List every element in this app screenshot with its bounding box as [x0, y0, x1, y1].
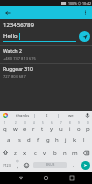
staticText: l — [83, 136, 85, 144]
button[interactable]: j — [61, 133, 70, 146]
button[interactable]: v — [40, 146, 50, 159]
staticText: 123456789 — [3, 21, 34, 29]
staticText: f — [37, 136, 40, 144]
staticText: c — [34, 149, 37, 157]
staticText: s — [18, 136, 21, 144]
button[interactable]: Watch 2 — [0, 45, 92, 63]
button[interactable]: n — [60, 146, 70, 159]
button[interactable]: Period — [69, 159, 78, 171]
staticText: d — [27, 136, 31, 144]
button[interactable]: c — [30, 146, 40, 159]
button[interactable]: 9 — [74, 120, 83, 133]
button[interactable]: b — [50, 146, 60, 159]
staticText: g — [46, 136, 50, 144]
button[interactable]: m — [70, 146, 80, 159]
button[interactable]: 1 — [0, 120, 10, 133]
staticText: m — [72, 149, 78, 157]
staticText: o — [77, 125, 81, 133]
button[interactable]: Send — [81, 161, 90, 170]
button[interactable]: k — [70, 133, 79, 146]
staticText: p — [86, 125, 90, 133]
staticText: 0 — [87, 121, 89, 125]
button[interactable]: Backspace — [80, 146, 92, 159]
button[interactable]: 6 — [47, 120, 56, 133]
staticText: 8 — [69, 121, 71, 125]
staticText: q — [3, 125, 7, 133]
staticText: x — [23, 149, 27, 157]
staticText: +480 737 813 676 — [3, 56, 36, 61]
staticText: 4 — [33, 121, 35, 125]
staticText: 9 — [78, 121, 80, 125]
staticText: y — [50, 125, 54, 133]
button[interactable]: 2 — [10, 120, 20, 133]
staticText: e — [23, 125, 27, 133]
button[interactable]: x — [20, 146, 30, 159]
staticText: . — [73, 162, 75, 169]
button[interactable]: z — [11, 146, 20, 159]
staticText: j — [65, 136, 67, 144]
button[interactable]: l — [79, 133, 88, 146]
button[interactable]: Ruggear 310 — [0, 63, 92, 81]
staticText: 7 — [60, 121, 62, 125]
staticText: t — [41, 125, 44, 133]
button[interactable]: 4 — [29, 120, 38, 133]
staticText: 10:42 — [82, 1, 91, 6]
staticText: n — [63, 149, 67, 157]
staticText: thanks — [16, 113, 30, 119]
button[interactable]: a — [4, 133, 14, 146]
staticText: w — [13, 125, 18, 133]
staticText: Hello — [3, 32, 18, 40]
staticText: 3 — [24, 121, 26, 125]
button[interactable]: Comma — [13, 159, 22, 171]
button[interactable]: Shift — [0, 146, 11, 159]
staticText: Watch 2 — [3, 48, 22, 55]
staticText: v — [43, 149, 47, 157]
staticText: u — [59, 125, 63, 133]
button[interactable]: Emoji — [22, 159, 31, 171]
button[interactable]: 7 — [56, 120, 65, 133]
button[interactable]: 3 — [20, 120, 29, 133]
staticText: 1 — [4, 121, 6, 125]
button[interactable]: we — [59, 111, 82, 120]
staticText: ?123 — [3, 163, 11, 168]
button[interactable]: d — [24, 133, 34, 146]
button[interactable]: Back — [16, 173, 26, 183]
staticText: , — [17, 163, 19, 170]
button[interactable]: Back — [3, 8, 12, 17]
staticText: Ruggear 310 — [3, 66, 33, 73]
button[interactable]: 8 — [65, 120, 74, 133]
button[interactable]: 5 — [38, 120, 47, 133]
staticText: EN-US — [46, 163, 55, 167]
button[interactable]: Send — [79, 31, 90, 42]
button[interactable]: g — [43, 133, 52, 146]
staticText: h — [55, 136, 59, 144]
staticText: 5 — [42, 121, 44, 125]
staticText: ☺ — [16, 160, 19, 163]
staticText: 727 803 687 — [3, 74, 26, 79]
staticText: r — [32, 125, 35, 133]
staticText: 2 — [15, 121, 17, 125]
button[interactable]: More options — [81, 8, 90, 17]
staticText: 6 — [51, 121, 53, 125]
button[interactable]: 0 — [83, 120, 92, 133]
button[interactable]: s — [14, 133, 24, 146]
button[interactable]: f — [34, 133, 43, 146]
button[interactable]: I — [35, 111, 58, 120]
staticText: we — [68, 113, 74, 119]
button[interactable]: h — [52, 133, 61, 146]
staticText: a — [7, 136, 11, 144]
button[interactable]: ?123 — [0, 159, 13, 171]
button[interactable]: thanks — [11, 111, 34, 120]
button[interactable]: Space — [33, 162, 67, 168]
staticText: 100% — [68, 1, 77, 6]
button[interactable]: Recents — [67, 173, 77, 183]
staticText: b — [53, 149, 57, 157]
staticText: z — [14, 149, 17, 157]
button[interactable]: Home — [41, 173, 51, 183]
staticText: i — [69, 125, 71, 133]
staticText: I — [46, 113, 48, 119]
button[interactable]: Voice input — [82, 111, 92, 120]
staticText: k — [73, 136, 77, 144]
